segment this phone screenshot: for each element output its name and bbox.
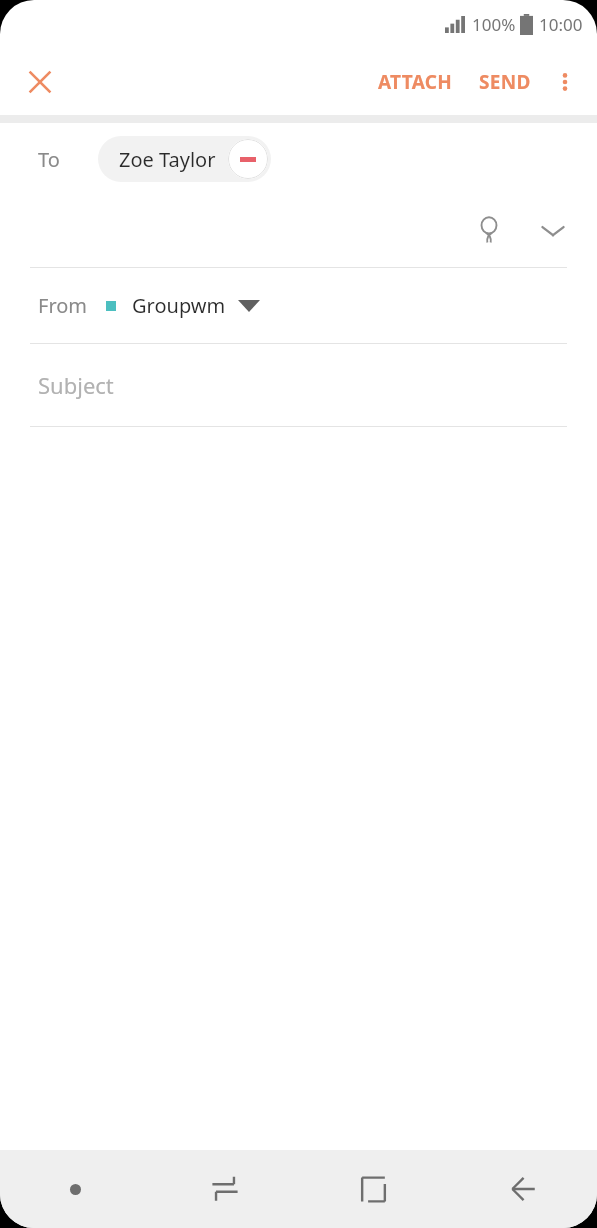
button[interactable]: Zoe Taylor: [98, 136, 271, 182]
button[interactable]: More options: [543, 60, 587, 104]
staticText: 100%: [472, 13, 516, 36]
button[interactable]: From: [0, 268, 597, 343]
staticText: ATTACH: [378, 69, 453, 95]
staticText: Subject: [38, 370, 114, 400]
button[interactable]: Add from contacts: [465, 207, 513, 255]
button[interactable]: Subject: [0, 344, 597, 426]
staticText: SEND: [479, 69, 531, 95]
button[interactable]: Remove Zoe Taylor: [228, 139, 268, 179]
button[interactable]: Back: [448, 1150, 597, 1228]
button[interactable]: SEND: [471, 59, 539, 105]
button[interactable]: Hide keyboard: [0, 1150, 150, 1228]
button[interactable]: Expand recipients: [531, 209, 575, 253]
staticText: 10:00: [539, 13, 583, 36]
button[interactable]: ATTACH: [370, 59, 461, 105]
staticText: Zoe Taylor: [119, 146, 216, 173]
button[interactable]: Close: [16, 58, 64, 106]
button[interactable]: Recent apps: [150, 1150, 299, 1228]
button[interactable]: Home: [299, 1150, 448, 1228]
staticText: To: [38, 146, 60, 173]
staticText: From: [38, 292, 88, 319]
staticText: Groupwm: [132, 292, 226, 319]
